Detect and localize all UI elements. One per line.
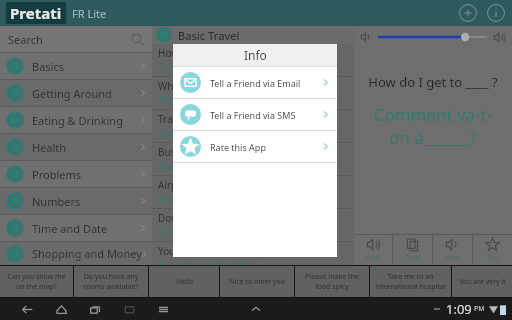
button[interactable]: Expand (247, 300, 265, 318)
button[interactable]: Info (486, 3, 506, 23)
button[interactable]: Back (10, 298, 44, 320)
button[interactable]: Recents (78, 298, 112, 320)
button[interactable]: Hello (152, 266, 216, 297)
staticText: Nice to meet you (229, 277, 285, 287)
staticText: Pretati (10, 3, 62, 23)
button[interactable]: Basics (6, 53, 147, 79)
button[interactable]: Numbers (6, 188, 147, 214)
staticText: Basic Travel (178, 28, 240, 43)
button[interactable]: Where is the ____? (158, 79, 354, 109)
button[interactable]: Eating & Drinking (6, 107, 147, 133)
button[interactable]: Train station (158, 112, 354, 142)
staticText: Eating & Drinking (32, 113, 123, 128)
staticText: Can you show me on the map? (3, 272, 70, 292)
button[interactable]: Tell a Friend via SMS (180, 99, 330, 130)
staticText: Copy (404, 253, 421, 263)
staticText: Tell a Friend via Email (210, 77, 301, 89)
button[interactable]: Copy (393, 235, 432, 265)
button[interactable]: Slow (433, 235, 472, 265)
button[interactable]: Health (6, 134, 147, 160)
staticText: Train station (158, 112, 217, 126)
staticText: PM (474, 304, 485, 314)
button[interactable]: Take me to an international hospital (373, 266, 448, 297)
staticText: Please make the food spicy (298, 272, 366, 292)
staticText: Do you have any rooms available? (77, 272, 145, 292)
button[interactable]: Airport (158, 178, 354, 208)
staticText: How do I get to ____? (158, 46, 255, 60)
button[interactable]: Home (44, 298, 78, 320)
staticText: Bus station (158, 145, 211, 159)
button[interactable]: Menu (146, 298, 180, 320)
button[interactable]: Can you show me on the map? (3, 266, 70, 297)
button[interactable]: Problems (6, 161, 147, 187)
button[interactable]: Please make the food spicy (298, 266, 366, 297)
button[interactable]: Shopping and Money (6, 242, 147, 265)
button[interactable]: Play (354, 235, 392, 265)
staticText: Rate this App (210, 141, 266, 153)
staticText: Gare routière (158, 159, 221, 173)
staticText: Shopping and Money (32, 246, 142, 261)
staticText: Youth hostel (158, 244, 217, 258)
button[interactable]: Bus station (158, 145, 354, 175)
staticText: Numbers (32, 194, 81, 209)
button[interactable]: Do you have any rooms available? (77, 266, 145, 297)
staticText: FR Lite (72, 6, 107, 21)
staticText: Problems (32, 167, 81, 182)
staticText: Aéroport (158, 192, 200, 206)
staticText: Getting Around (32, 86, 112, 101)
staticText: Comment va-t-on à____? (158, 60, 271, 74)
staticText: Comment va-t-on à______? (366, 103, 500, 149)
staticText: Centre-ville (158, 225, 211, 239)
staticText: Search (8, 32, 43, 47)
staticText: Downtown (158, 211, 209, 225)
staticText: 1:09 (446, 300, 472, 318)
button[interactable]: How do I get to ____? (158, 46, 354, 76)
staticText: Airport (158, 178, 192, 192)
button[interactable]: Fav (473, 235, 512, 265)
staticText: Hello (176, 277, 193, 287)
other: Volume high (493, 31, 506, 44)
button[interactable]: Youth hostel (158, 244, 354, 265)
staticText: Basics (32, 59, 64, 74)
button[interactable]: Search (8, 26, 144, 52)
button[interactable]: Add (458, 3, 478, 23)
staticText: Health (32, 140, 67, 155)
staticText: Where is the ____? (158, 79, 242, 93)
staticText: Tell a Friend via SMS (210, 109, 296, 121)
other: Volume low (360, 31, 372, 43)
staticText: How do I get to ____ ? (368, 73, 498, 91)
button[interactable]: Screenshot (112, 298, 146, 320)
button[interactable]: Downtown (158, 211, 354, 241)
button[interactable]: You are very b (455, 266, 509, 297)
staticText: Take me to an international hospital (373, 272, 448, 292)
button[interactable]: Rate this App (180, 131, 330, 162)
staticText: Info (244, 47, 267, 63)
button[interactable]: Tell a Friend via Email (180, 67, 330, 98)
button[interactable]: Getting Around (6, 80, 147, 106)
button[interactable]: Nice to meet you (223, 266, 291, 297)
staticText: Fav (487, 253, 499, 263)
staticText: Où est ____? (158, 93, 214, 107)
staticText: You are very b (459, 277, 506, 287)
staticText: Play (366, 253, 380, 263)
staticText: Auberge de jeunesse (158, 258, 257, 265)
staticText: Slow (445, 253, 461, 263)
button[interactable]: Time and Date (6, 215, 147, 241)
staticText: Time and Date (32, 221, 108, 236)
button[interactable]: Basic Travel (156, 26, 354, 44)
staticText: Gare ferroviaire (158, 126, 232, 140)
